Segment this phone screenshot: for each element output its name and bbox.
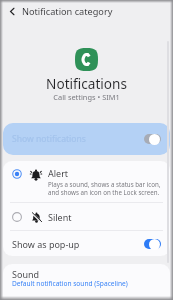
- button[interactable]: Alert: [3, 161, 170, 202]
- staticText: Notification category: [22, 5, 113, 18]
- staticText: Call settings • SIM1: [3, 92, 170, 102]
- staticText: Default notification sound (Spaceline): [12, 279, 128, 288]
- staticText: Show notifications: [12, 133, 143, 145]
- button[interactable]: Sound: [3, 264, 170, 300]
- button[interactable]: Silent: [3, 203, 170, 230]
- staticText: Sound: [12, 268, 40, 280]
- button[interactable]: Toggle: [143, 238, 161, 250]
- button[interactable]: Show as pop-up: [3, 231, 170, 256]
- staticText: Alert: [48, 167, 69, 179]
- staticText: Silent: [48, 211, 72, 223]
- button[interactable]: Toggle: [143, 133, 161, 145]
- staticText: Notifications: [3, 74, 170, 93]
- button[interactable]: Back: [3, 2, 22, 21]
- staticText: Show as pop-up: [12, 238, 143, 250]
- staticText: Plays a sound, shows a status bar icon, …: [48, 180, 161, 196]
- button[interactable]: Show notifications: [3, 123, 170, 155]
